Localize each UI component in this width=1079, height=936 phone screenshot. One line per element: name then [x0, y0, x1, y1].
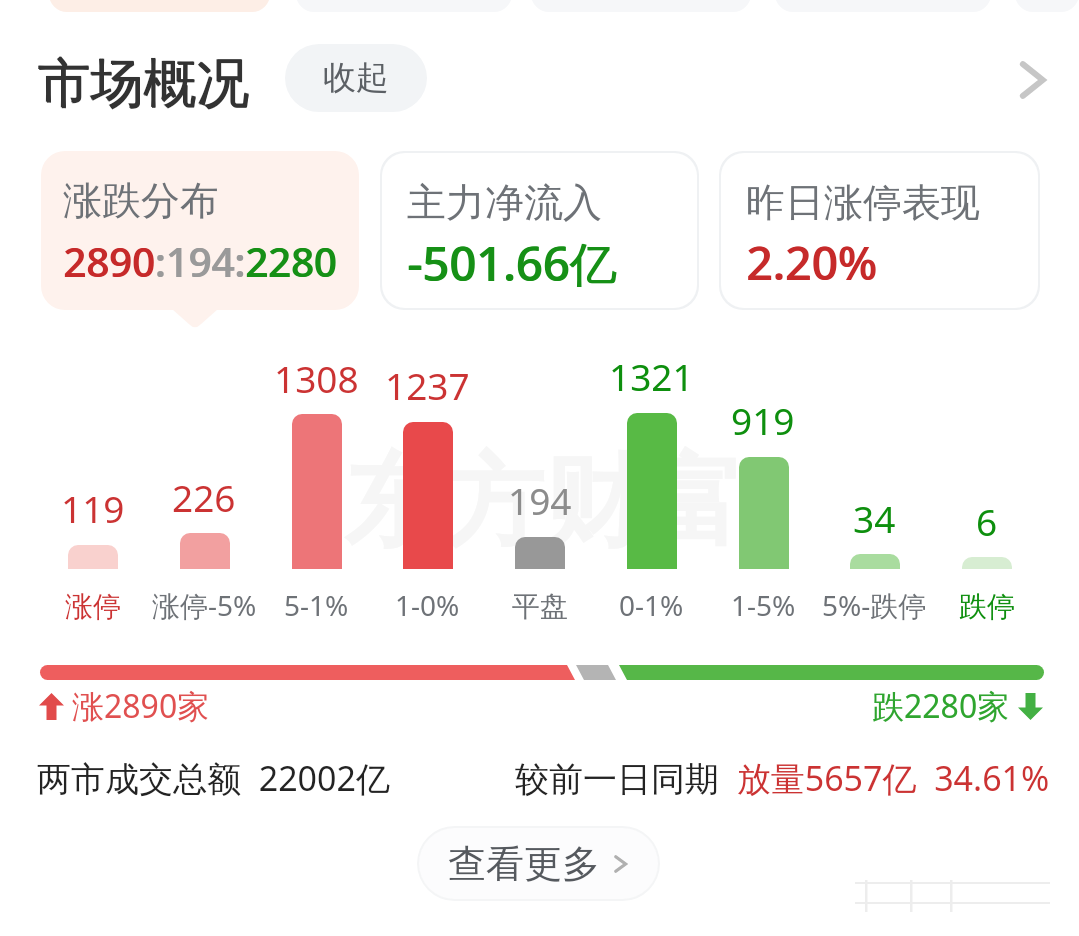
button[interactable]: 主力净流入: [382, 153, 697, 308]
staticText: 194: [508, 475, 572, 525]
button[interactable]: 查看更多: [419, 828, 658, 899]
staticText: 0-1%: [619, 586, 684, 624]
staticText: 跌2280家: [872, 684, 1010, 728]
staticText: 涨跌分布: [63, 176, 219, 225]
staticText: 2.20%: [747, 231, 878, 294]
staticText: 34: [853, 493, 896, 543]
staticText: 东方财富: [344, 440, 744, 566]
staticText: 2890:194:2280: [64, 234, 338, 288]
staticText: 1-0%: [395, 586, 460, 624]
staticText: 1-5%: [731, 586, 796, 624]
staticText: 1308: [274, 353, 359, 403]
button[interactable]: 收起: [285, 44, 427, 112]
staticText: 6: [976, 496, 998, 546]
staticText: 5%-跌停: [822, 586, 927, 624]
staticText: 收起: [323, 57, 389, 99]
staticText: 查看更多: [448, 840, 600, 888]
staticText: 两市成交总额 22002亿: [37, 755, 390, 801]
staticText: 跌停: [959, 589, 1015, 624]
staticText: 226: [172, 472, 236, 522]
staticText: -501.66亿: [408, 231, 618, 295]
staticText: 较前一日同期 放量5657亿 34.61%: [515, 755, 1050, 801]
staticText: 市场概况: [37, 50, 249, 117]
button[interactable]: 昨日涨停表现: [721, 153, 1038, 308]
staticText: 919: [731, 395, 795, 445]
staticText: 119: [61, 483, 125, 533]
staticText: 2890:194:2280: [63, 234, 337, 288]
staticText: 1237: [385, 360, 470, 410]
staticText: 2.20%: [746, 231, 877, 294]
staticText: 涨2890家: [72, 684, 210, 728]
staticText: -501.66亿: [407, 231, 617, 295]
staticText: 涨停-5%: [152, 586, 257, 624]
button[interactable]: More: [1001, 48, 1065, 112]
staticText: 平盘: [512, 589, 568, 624]
button[interactable]: 涨跌分布: [41, 151, 359, 310]
staticText: 市场概况: [38, 50, 250, 117]
staticText: 涨停: [65, 589, 121, 624]
staticText: 市场概况: [38, 51, 250, 118]
staticText: 主力净流入: [407, 178, 602, 227]
staticText: 5-1%: [284, 586, 349, 624]
staticText: 昨日涨停表现: [746, 178, 980, 227]
staticText: 1321: [609, 351, 694, 401]
